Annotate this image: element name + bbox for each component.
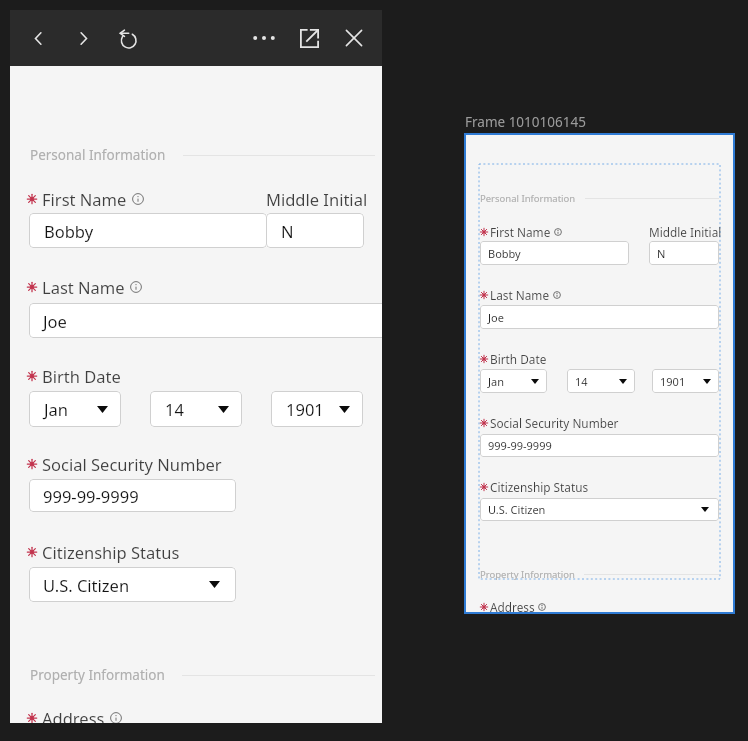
- staticText: Frame 1010106145: [465, 113, 586, 131]
- staticText: U.S. Citizen: [488, 502, 546, 517]
- button[interactable]: N: [266, 213, 364, 248]
- staticText: First Name: [42, 188, 127, 210]
- staticText: 1901: [286, 398, 324, 420]
- staticText: 14: [165, 398, 184, 420]
- staticText: Property Information: [30, 666, 165, 684]
- staticText: Jan: [44, 398, 68, 420]
- button[interactable]: More options: [246, 20, 282, 56]
- staticText: First Name: [490, 224, 551, 240]
- staticText: 14: [575, 374, 588, 389]
- staticText: U.S. Citizen: [43, 574, 130, 596]
- staticText: Last Name: [42, 276, 125, 298]
- staticText: 999-99-9999: [488, 438, 552, 453]
- button[interactable]: 1901: [271, 391, 363, 427]
- staticText: Joe: [488, 310, 504, 325]
- staticText: Address: [42, 707, 105, 723]
- staticText: 999-99-9999: [43, 485, 139, 507]
- staticText: Personal Information: [30, 146, 166, 164]
- staticText: 1901: [660, 374, 686, 389]
- button[interactable]: Jan: [29, 391, 121, 427]
- staticText: Bobby: [44, 220, 94, 242]
- staticText: Birth Date: [42, 365, 121, 387]
- button[interactable]: N: [649, 241, 719, 265]
- staticText: Social Security Number: [42, 453, 222, 475]
- button[interactable]: Bobby: [29, 213, 267, 248]
- button[interactable]: 14: [150, 391, 242, 427]
- staticText: Address: [490, 599, 535, 614]
- staticText: Property Information: [480, 568, 575, 581]
- button[interactable]: Refresh: [109, 20, 145, 56]
- staticText: Middle Initial: [649, 224, 722, 240]
- staticText: Jan: [488, 374, 504, 389]
- button[interactable]: Joe: [29, 303, 382, 338]
- button[interactable]: 999-99-9999: [29, 479, 236, 512]
- button[interactable]: Back: [20, 20, 56, 56]
- button[interactable]: 14: [567, 369, 635, 393]
- button[interactable]: Jan: [480, 369, 547, 393]
- button[interactable]: U.S. Citizen: [480, 498, 719, 521]
- staticText: N: [657, 246, 666, 261]
- button[interactable]: U.S. Citizen: [29, 567, 236, 602]
- button[interactable]: Joe: [480, 305, 719, 329]
- button[interactable]: 1901: [652, 369, 719, 393]
- button[interactable]: Close: [336, 20, 372, 56]
- staticText: Last Name: [490, 287, 550, 303]
- staticText: Citizenship Status: [490, 479, 589, 495]
- staticText: N: [281, 220, 294, 242]
- staticText: Social Security Number: [490, 415, 619, 431]
- staticText: Bobby: [488, 246, 521, 261]
- staticText: Birth Date: [490, 351, 547, 367]
- staticText: Personal Information: [480, 192, 576, 205]
- button[interactable]: Open in new window: [291, 20, 327, 56]
- button[interactable]: Bobby: [480, 241, 629, 265]
- button[interactable]: 999-99-9999: [480, 434, 719, 457]
- button[interactable]: Forward: [65, 20, 101, 56]
- staticText: Middle Initial: [266, 188, 368, 210]
- staticText: Joe: [43, 310, 67, 332]
- staticText: Citizenship Status: [42, 541, 180, 563]
